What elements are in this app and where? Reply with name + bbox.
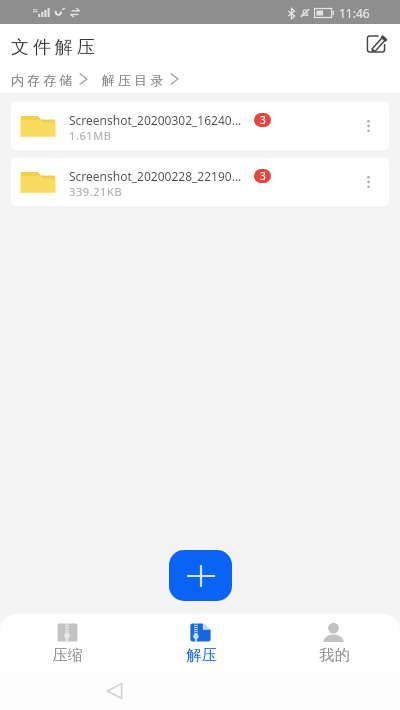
staticText: 11:46 bbox=[339, 5, 370, 21]
button[interactable]: More options bbox=[357, 171, 379, 193]
staticText: 文件解压 bbox=[11, 36, 99, 59]
button[interactable]: 解压目录 bbox=[102, 69, 179, 88]
button[interactable]: 内存存储 bbox=[11, 69, 88, 88]
staticText: 1.61MB bbox=[69, 128, 112, 143]
staticText: 我的 bbox=[319, 646, 350, 665]
staticText: Screenshot_20200302_16240... bbox=[69, 112, 242, 128]
button[interactable]: Add bbox=[169, 550, 232, 601]
button[interactable]: Back bbox=[98, 675, 130, 707]
staticText: Screenshot_20200228_22190... bbox=[69, 168, 242, 184]
button[interactable]: 压缩 bbox=[0, 623, 134, 665]
staticText: 3 bbox=[260, 113, 266, 127]
staticText: 解压 bbox=[186, 646, 217, 665]
staticText: 内存存储 bbox=[11, 72, 76, 88]
staticText: 解压目录 bbox=[102, 72, 167, 88]
staticText: 压缩 bbox=[52, 646, 83, 665]
button[interactable]: 解压 bbox=[134, 623, 267, 665]
button[interactable]: Screenshot_20200302_16240... bbox=[11, 102, 389, 150]
button[interactable]: Edit bbox=[360, 28, 392, 60]
staticText: 339.21KB bbox=[69, 184, 123, 199]
button[interactable]: More options bbox=[357, 115, 379, 137]
staticText: 3 bbox=[260, 169, 266, 183]
button[interactable]: 我的 bbox=[267, 623, 400, 665]
button[interactable]: Screenshot_20200228_22190... bbox=[11, 158, 389, 206]
